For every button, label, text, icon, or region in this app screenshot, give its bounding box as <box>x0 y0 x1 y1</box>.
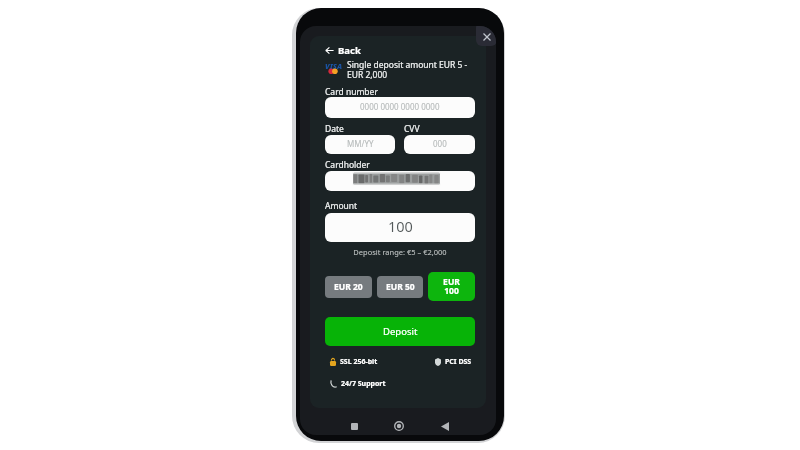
button[interactable]: EUR 50 <box>377 276 423 298</box>
staticText: Amount <box>325 200 358 212</box>
staticText: Deposit range: €5 – €2,000 <box>325 247 475 257</box>
staticText: SSL 256-bit <box>340 357 378 367</box>
staticText: EUR 20 <box>334 281 363 293</box>
button[interactable]: EUR 100 <box>428 272 475 301</box>
staticText: Deposit <box>383 325 418 338</box>
button[interactable]: MM/YY <box>325 135 395 154</box>
button[interactable]: 24/7 Support <box>330 379 386 389</box>
staticText: Back <box>338 44 361 57</box>
button[interactable]: Deposit <box>325 317 475 346</box>
staticText: Card number <box>325 86 378 98</box>
button[interactable]: EUR 20 <box>325 276 372 298</box>
staticText: CVV <box>404 123 420 135</box>
button[interactable] <box>325 171 475 191</box>
button[interactable]: 0000 0000 0000 0000 <box>325 97 475 118</box>
button[interactable]: SSL 256-bit <box>330 357 378 367</box>
button[interactable]: Back <box>436 417 454 435</box>
staticText: EUR 100 <box>443 276 460 297</box>
button[interactable]: PCI DSS <box>435 357 472 367</box>
staticText: EUR 50 <box>386 281 415 293</box>
staticText: 100 <box>388 216 413 236</box>
button[interactable]: Close <box>476 26 496 46</box>
staticText: 000 <box>433 138 447 149</box>
button[interactable]: Back <box>324 43 362 58</box>
button[interactable]: Recent apps <box>345 417 363 435</box>
staticText: 0000 0000 0000 0000 <box>360 101 440 112</box>
staticText: VISA <box>325 61 342 71</box>
staticText: Single deposit amount EUR 5 - EUR 2,000 <box>347 59 477 81</box>
button[interactable]: Home <box>390 417 408 435</box>
button[interactable]: 000 <box>404 135 475 154</box>
staticText: PCI DSS <box>445 357 472 367</box>
button[interactable]: 100 <box>325 213 475 242</box>
staticText: Cardholder <box>325 159 370 171</box>
staticText: 24/7 Support <box>341 379 386 389</box>
staticText: Date <box>325 123 344 135</box>
staticText: MM/YY <box>347 138 374 149</box>
